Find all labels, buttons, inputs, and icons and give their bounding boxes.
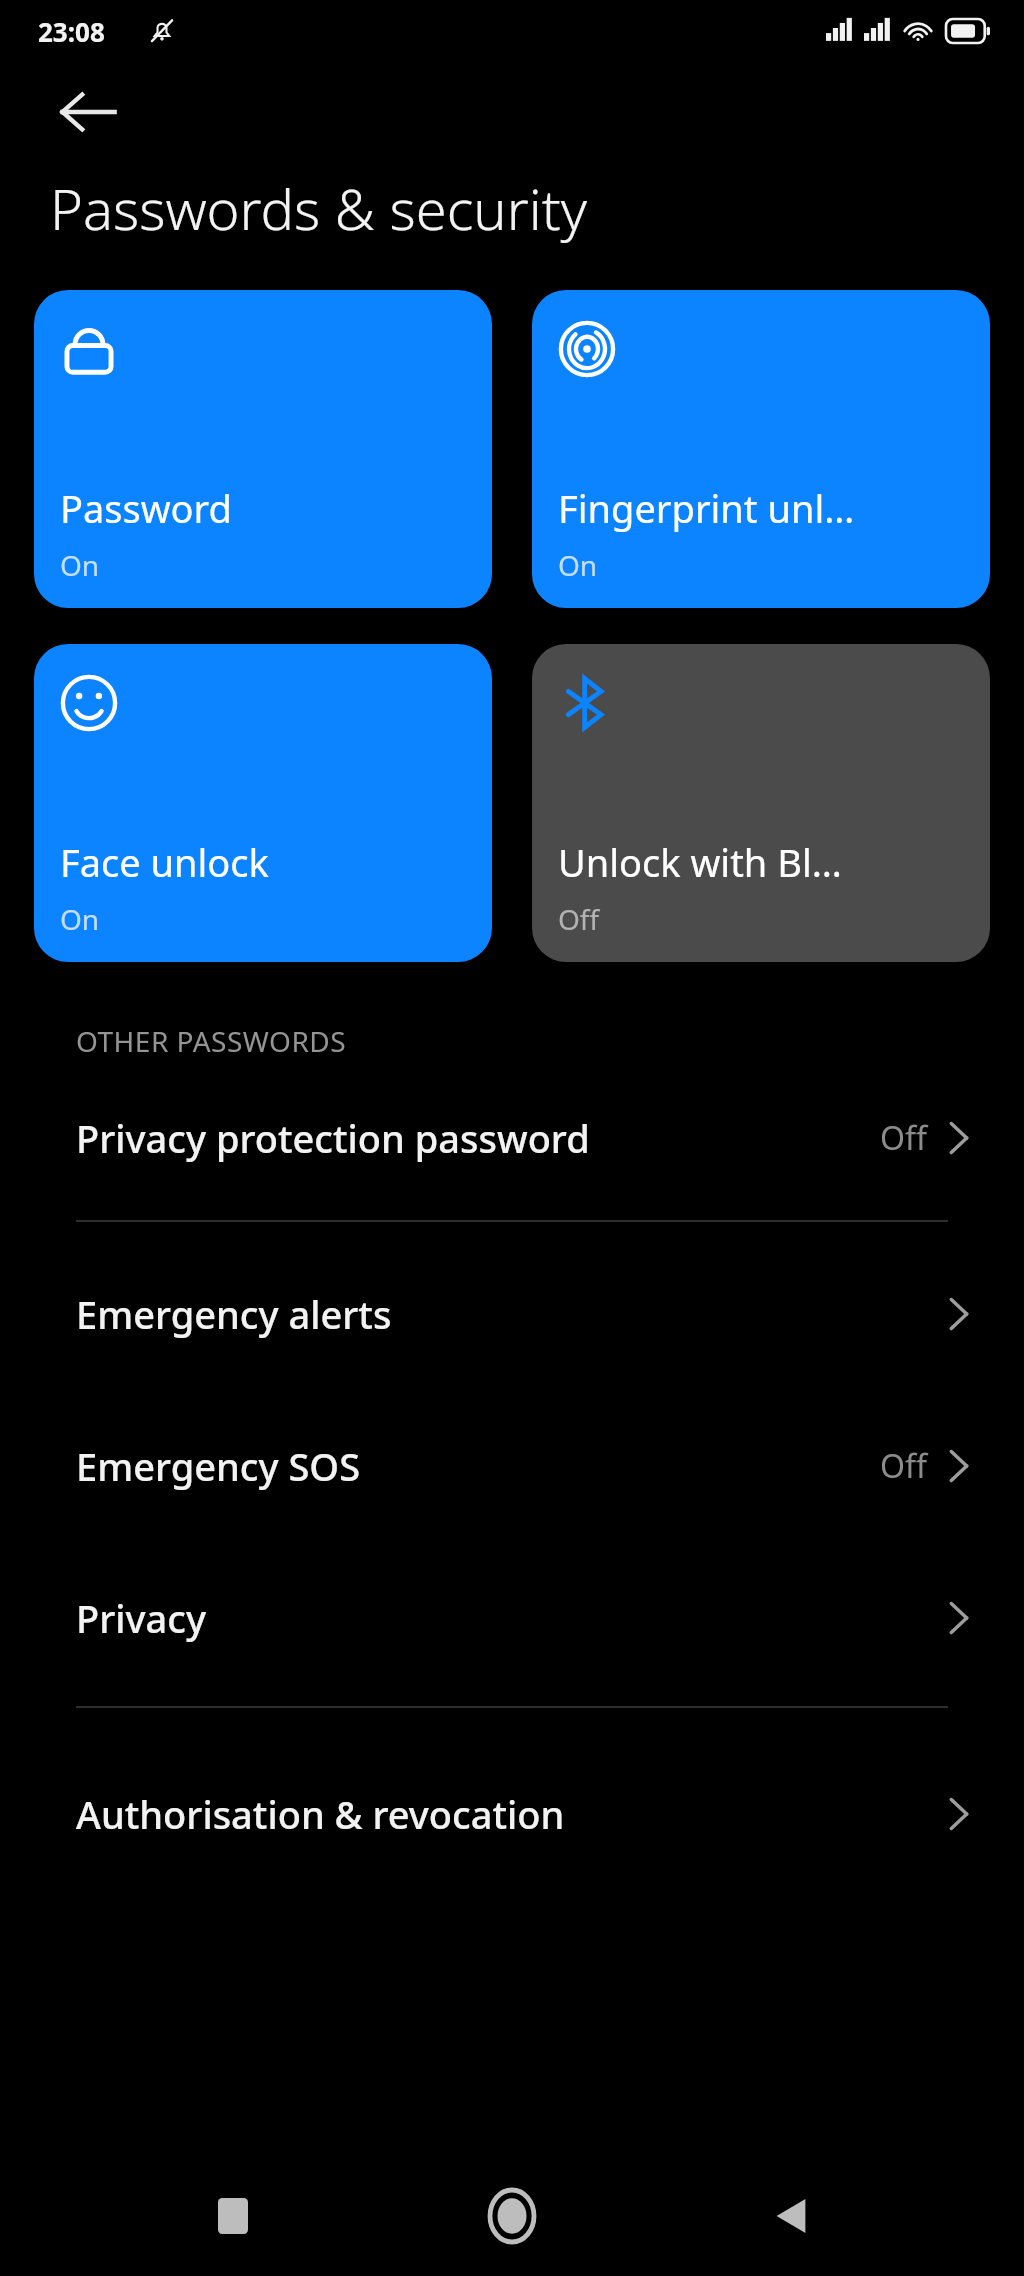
- staticText: Passwords & security: [50, 170, 588, 246]
- staticText: OTHER PASSWORDS: [76, 1022, 347, 1060]
- button[interactable]: Home: [466, 2170, 558, 2262]
- button[interactable]: Emergency alerts: [0, 1262, 1024, 1366]
- button[interactable]: Back: [745, 2170, 837, 2262]
- staticText: Fingerprint unl…: [558, 482, 855, 534]
- button[interactable]: Fingerprint unl…: [532, 290, 990, 608]
- button[interactable]: Back: [50, 74, 126, 150]
- staticText: Authorisation & revocation: [76, 1788, 948, 1840]
- button[interactable]: Face unlock: [34, 644, 492, 962]
- staticText: Face unlock: [60, 836, 269, 888]
- staticText: On: [60, 900, 100, 938]
- staticText: Password: [60, 482, 232, 534]
- button[interactable]: Unlock with Bl…: [532, 644, 990, 962]
- staticText: Emergency SOS: [76, 1440, 880, 1492]
- button[interactable]: Recent apps: [187, 2170, 279, 2262]
- staticText: Privacy: [76, 1592, 948, 1644]
- staticText: Off: [880, 1116, 928, 1160]
- button[interactable]: Emergency SOS: [0, 1414, 1024, 1518]
- staticText: Unlock with Bl…: [558, 836, 842, 888]
- button[interactable]: Privacy: [0, 1566, 1024, 1670]
- staticText: Emergency alerts: [76, 1288, 948, 1340]
- button[interactable]: Authorisation & revocation: [0, 1762, 1024, 1866]
- staticText: Off: [558, 900, 600, 938]
- button[interactable]: Privacy protection password: [0, 1086, 1024, 1190]
- staticText: On: [558, 546, 598, 584]
- staticText: On: [60, 546, 100, 584]
- button[interactable]: Password: [34, 290, 492, 608]
- staticText: 23:08: [38, 14, 105, 49]
- staticText: Privacy protection password: [76, 1112, 880, 1164]
- staticText: Off: [880, 1444, 928, 1488]
